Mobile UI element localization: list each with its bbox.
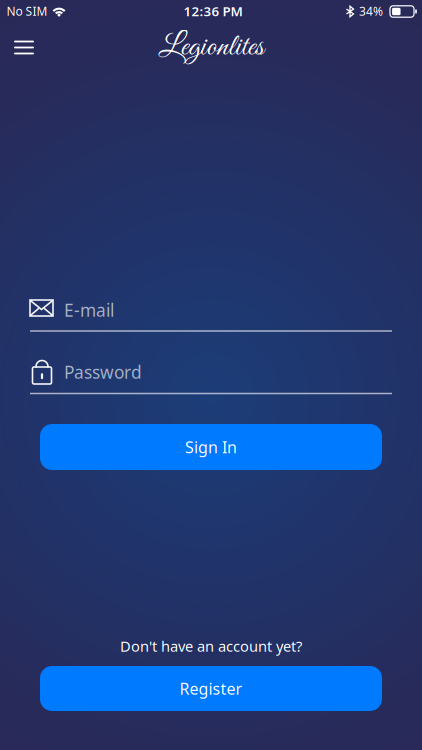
staticText: Don't have an account yet?	[120, 636, 302, 656]
button[interactable]: Register	[40, 666, 382, 711]
button[interactable]	[6, 29, 42, 65]
staticText: Password	[64, 360, 142, 383]
staticText: 12:36 PM	[183, 2, 242, 20]
button[interactable]: Sign In	[40, 424, 382, 470]
staticText: E-mail	[64, 298, 114, 321]
staticText: Sign In	[185, 436, 237, 458]
button[interactable]: Password	[30, 354, 392, 394]
staticText: Legionlites	[158, 28, 263, 67]
button[interactable]: E-mail	[30, 292, 392, 332]
staticText: No SIM	[6, 3, 47, 19]
staticText: 34%	[359, 3, 383, 19]
staticText: Register	[179, 678, 242, 699]
